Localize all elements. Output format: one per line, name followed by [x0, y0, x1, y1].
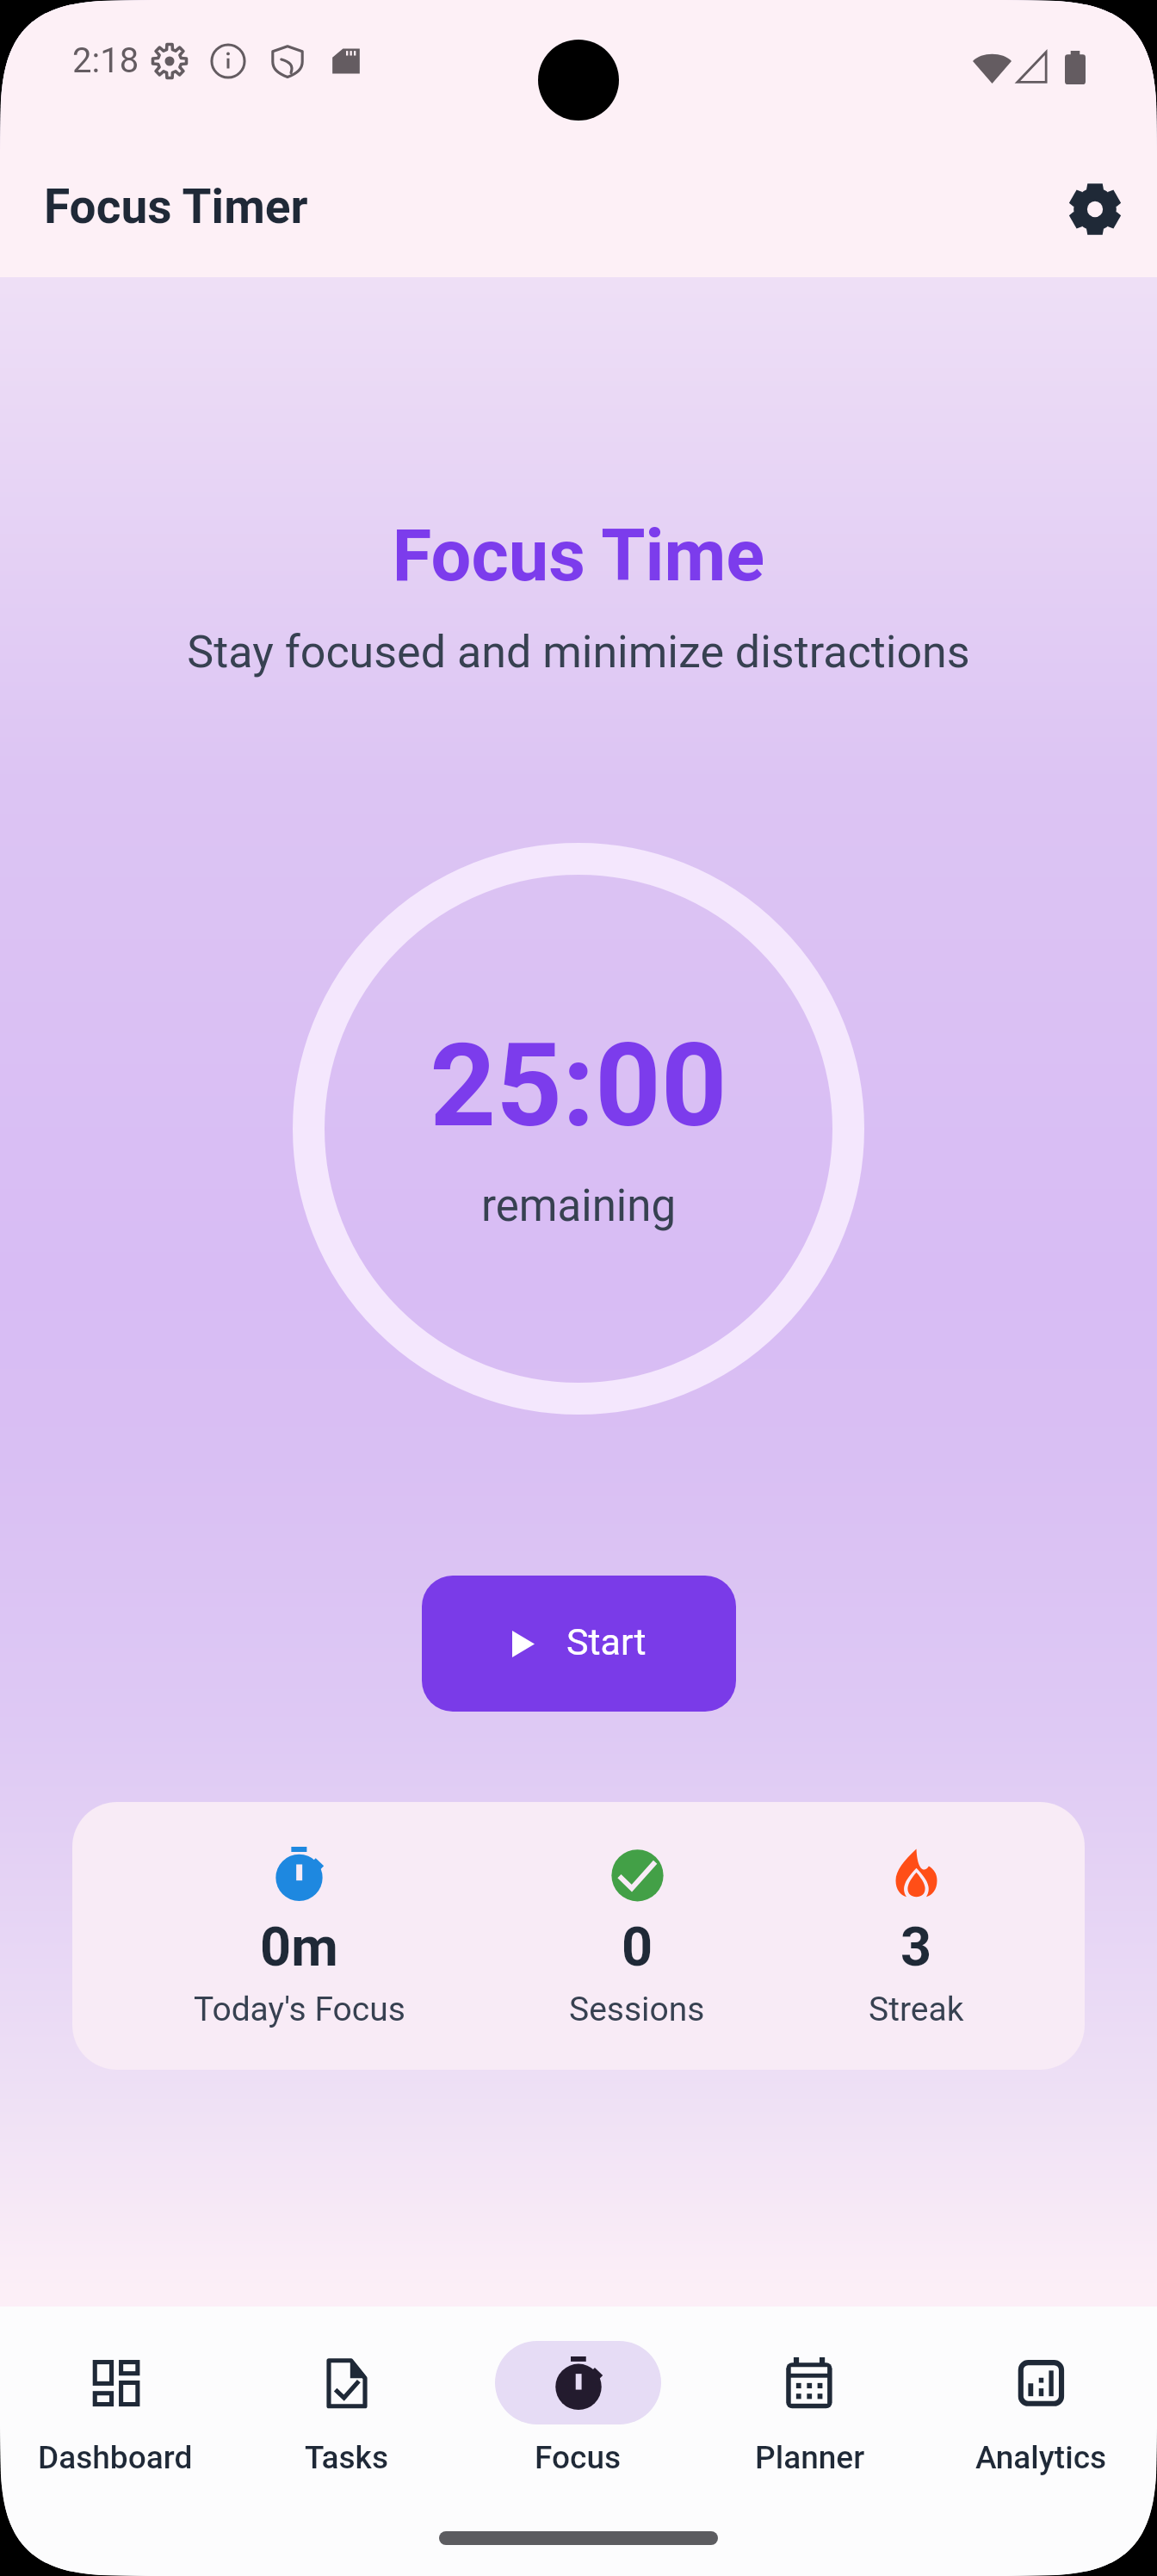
staticText: Stay focused and minimize distractions	[0, 626, 1157, 678]
staticText: 3	[900, 1916, 932, 1979]
button[interactable]: Settings	[1052, 166, 1138, 252]
button[interactable]: Analytics	[925, 2341, 1157, 2476]
staticText: Focus Timer	[44, 179, 308, 234]
button[interactable]: 0m	[111, 1802, 487, 2070]
staticText: Today's Focus	[194, 1990, 405, 2029]
staticText: 2:18	[72, 40, 139, 81]
button[interactable]: Focus	[462, 2341, 694, 2476]
staticText: Planner	[755, 2439, 865, 2476]
staticText: Sessions	[569, 1990, 705, 2029]
staticText: Dashboard	[38, 2439, 193, 2476]
staticText: Start	[566, 1620, 647, 1663]
staticText: remaining	[0, 1180, 1157, 1232]
staticText: Focus Time	[0, 514, 1157, 598]
staticText: 0m	[260, 1916, 338, 1979]
button[interactable]: Start	[422, 1576, 736, 1712]
button[interactable]: 3	[787, 1802, 1046, 2070]
staticText: 0	[622, 1916, 653, 1979]
button[interactable]: Planner	[694, 2341, 925, 2476]
staticText: Analytics	[975, 2439, 1107, 2476]
button[interactable]: Tasks	[231, 2341, 462, 2476]
button[interactable]: Dashboard	[0, 2341, 231, 2476]
staticText: Streak	[869, 1990, 964, 2029]
staticText: 25:00	[0, 1019, 1157, 1154]
staticText: Tasks	[305, 2439, 389, 2476]
button[interactable]: 0	[487, 1802, 787, 2070]
staticText: Focus	[535, 2439, 622, 2476]
